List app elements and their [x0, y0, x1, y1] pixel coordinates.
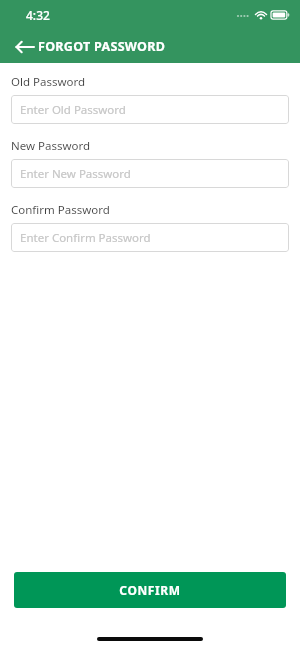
- staticText: Enter Confirm Password: [20, 230, 151, 246]
- staticText: 4:32: [26, 7, 50, 23]
- button[interactable]: Enter Old Password: [11, 95, 289, 124]
- staticText: New Password: [11, 138, 91, 154]
- button[interactable]: Enter New Password: [11, 159, 289, 188]
- button[interactable]: CONFIRM: [14, 572, 286, 608]
- staticText: CONFIRM: [119, 582, 181, 598]
- staticText: Enter Old Password: [20, 102, 126, 118]
- staticText: FORGOT PASSWORD: [38, 38, 166, 55]
- button[interactable]: Enter Confirm Password: [11, 223, 289, 252]
- button[interactable]: Back: [13, 36, 35, 58]
- staticText: Enter New Password: [20, 166, 131, 182]
- staticText: Old Password: [11, 74, 86, 90]
- staticText: Confirm Password: [11, 202, 110, 218]
